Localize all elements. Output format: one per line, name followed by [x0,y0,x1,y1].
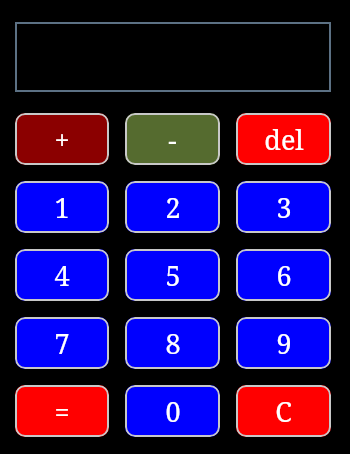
button[interactable]: 1 [15,181,109,233]
button[interactable]: 7 [15,317,109,369]
staticText: C [275,393,292,430]
button[interactable]: 4 [15,249,109,301]
staticText: 7 [54,325,70,362]
button[interactable]: C [236,385,331,437]
staticText: del [264,121,304,158]
staticText: 9 [276,325,292,362]
staticText: 3 [276,189,292,226]
button[interactable]: + [15,113,109,165]
staticText: + [54,121,70,158]
button[interactable]: 8 [125,317,220,369]
button[interactable]: 3 [236,181,331,233]
staticText: 1 [54,189,70,226]
staticText: 0 [165,393,181,430]
staticText: 6 [276,257,292,294]
staticText: 5 [165,257,181,294]
button[interactable]: 2 [125,181,220,233]
staticText: 8 [165,325,181,362]
button[interactable]: 6 [236,249,331,301]
staticText: = [54,393,70,430]
staticText: 4 [54,257,70,294]
staticText: 2 [165,189,181,226]
button[interactable]: 0 [125,385,220,437]
button[interactable]: del [236,113,331,165]
button[interactable]: 5 [125,249,220,301]
button[interactable]: 9 [236,317,331,369]
button[interactable]: = [15,385,109,437]
button[interactable]: Calculator display [15,22,331,92]
button[interactable]: - [125,113,220,165]
staticText: - [168,121,177,158]
